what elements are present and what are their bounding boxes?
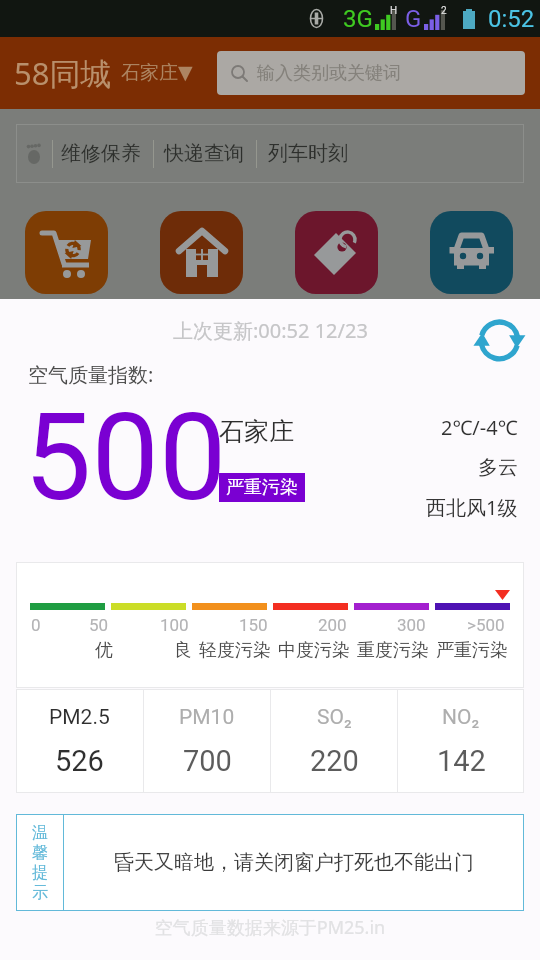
- button[interactable]: Refresh: [473, 314, 519, 360]
- staticText: SO₂: [317, 705, 352, 730]
- button[interactable]: PM10: [144, 689, 270, 793]
- staticText: 提: [32, 863, 48, 883]
- staticText: 3G: [343, 5, 373, 33]
- staticText: 输入类别或关键词: [257, 62, 401, 85]
- button[interactable]: Second hand market: [25, 211, 108, 294]
- staticText: 空气质量指数:: [28, 361, 154, 388]
- button[interactable]: SO₂: [271, 689, 397, 793]
- staticText: 严重污染: [436, 639, 508, 662]
- staticText: 0:52: [488, 5, 535, 33]
- staticText: 2: [441, 5, 447, 17]
- button[interactable]: Deals: [295, 211, 378, 294]
- staticText: >500: [467, 615, 505, 635]
- staticText: 馨: [32, 843, 48, 863]
- button[interactable]: 维修保养: [16, 124, 524, 183]
- staticText: 500: [24, 388, 227, 519]
- staticText: 维修保养: [61, 141, 141, 166]
- staticText: PM2.5: [49, 705, 110, 730]
- staticText: 列车时刻: [268, 141, 348, 166]
- staticText: 重度污染: [357, 639, 429, 662]
- staticText: 石家庄: [219, 416, 294, 447]
- staticText: 优: [95, 639, 113, 662]
- button[interactable]: 输入类别或关键词: [217, 51, 525, 95]
- staticText: 空气质量数据来源于PM25.in: [0, 915, 540, 940]
- staticText: 上次更新:00:52 12/23: [173, 317, 368, 344]
- staticText: H: [390, 5, 398, 17]
- staticText: 轻度污染: [199, 639, 271, 662]
- staticText: 100: [160, 615, 189, 635]
- staticText: 300: [397, 615, 426, 635]
- staticText: 多云: [478, 455, 518, 480]
- button[interactable]: NO₂: [398, 689, 524, 793]
- staticText: 220: [310, 744, 359, 778]
- button[interactable]: Cars: [430, 211, 513, 294]
- staticText: G: [405, 5, 422, 33]
- staticText: 2℃/-4℃: [441, 414, 518, 441]
- staticText: 142: [437, 744, 486, 778]
- button[interactable]: PM2.5: [16, 689, 143, 793]
- staticText: 0: [31, 615, 41, 635]
- staticText: 良: [174, 639, 192, 662]
- staticText: 西北风1级: [426, 494, 518, 519]
- staticText: NO₂: [442, 705, 480, 730]
- staticText: 石家庄▼: [121, 61, 193, 85]
- staticText: 526: [55, 744, 104, 778]
- staticText: 200: [318, 615, 347, 635]
- staticText: 中度污染: [278, 639, 350, 662]
- staticText: 严重污染: [226, 476, 298, 499]
- staticText: 示: [32, 883, 48, 903]
- staticText: 快递查询: [164, 141, 244, 166]
- staticText: 昏天又暗地，请关闭窗户打死也不能出门: [114, 850, 474, 875]
- staticText: 温: [32, 823, 48, 843]
- staticText: PM10: [179, 705, 235, 730]
- staticText: 58同城: [14, 52, 112, 94]
- staticText: 50: [89, 615, 109, 635]
- staticText: 150: [239, 615, 268, 635]
- staticText: 700: [183, 744, 232, 778]
- button[interactable]: Housing: [160, 211, 243, 294]
